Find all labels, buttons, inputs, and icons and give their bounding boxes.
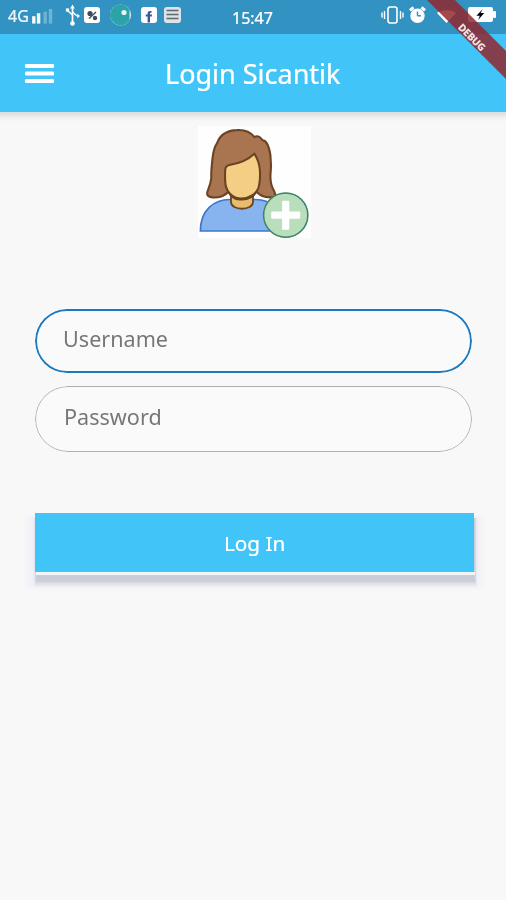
staticText: 15:47 [232, 7, 273, 29]
staticText: Password [64, 402, 162, 431]
button[interactable]: Password [35, 386, 472, 452]
button[interactable]: Username [35, 309, 472, 373]
staticText: Log In [224, 529, 286, 557]
staticText: Username [63, 324, 169, 353]
button[interactable]: Open navigation menu [12, 46, 66, 100]
button[interactable]: Log In [35, 513, 474, 572]
staticText: Login Sicantik [165, 55, 341, 92]
staticText: 4G [8, 5, 29, 27]
staticText: DEBUG [455, 21, 489, 54]
